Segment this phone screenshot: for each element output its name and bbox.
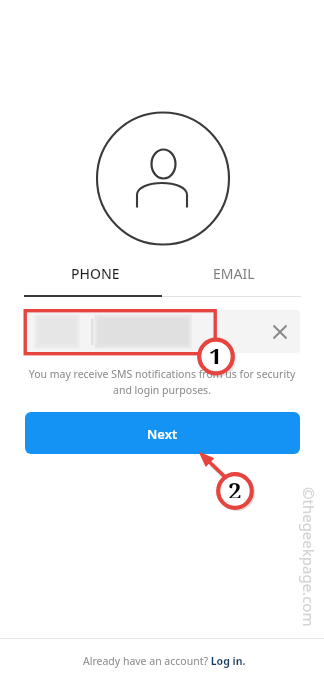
staticText: Already have an account? Log in. <box>83 654 246 668</box>
button[interactable]: Next <box>25 412 300 454</box>
button[interactable]: Already have an account? Log in. <box>0 640 324 681</box>
staticText: You may receive SMS notifications from u… <box>28 367 296 397</box>
button[interactable]: Clear text <box>269 321 291 343</box>
staticText: 2 <box>228 474 242 498</box>
staticText: EMAIL <box>213 264 255 283</box>
button[interactable]: PHONE <box>26 258 164 288</box>
staticText: PHONE <box>71 264 120 283</box>
staticText: Next <box>147 425 178 443</box>
button[interactable]: EMAIL <box>164 258 303 288</box>
staticText: ©thegeekpage.com <box>299 487 319 627</box>
staticText: 1 <box>209 340 223 364</box>
button[interactable]: Clear text <box>24 310 300 353</box>
